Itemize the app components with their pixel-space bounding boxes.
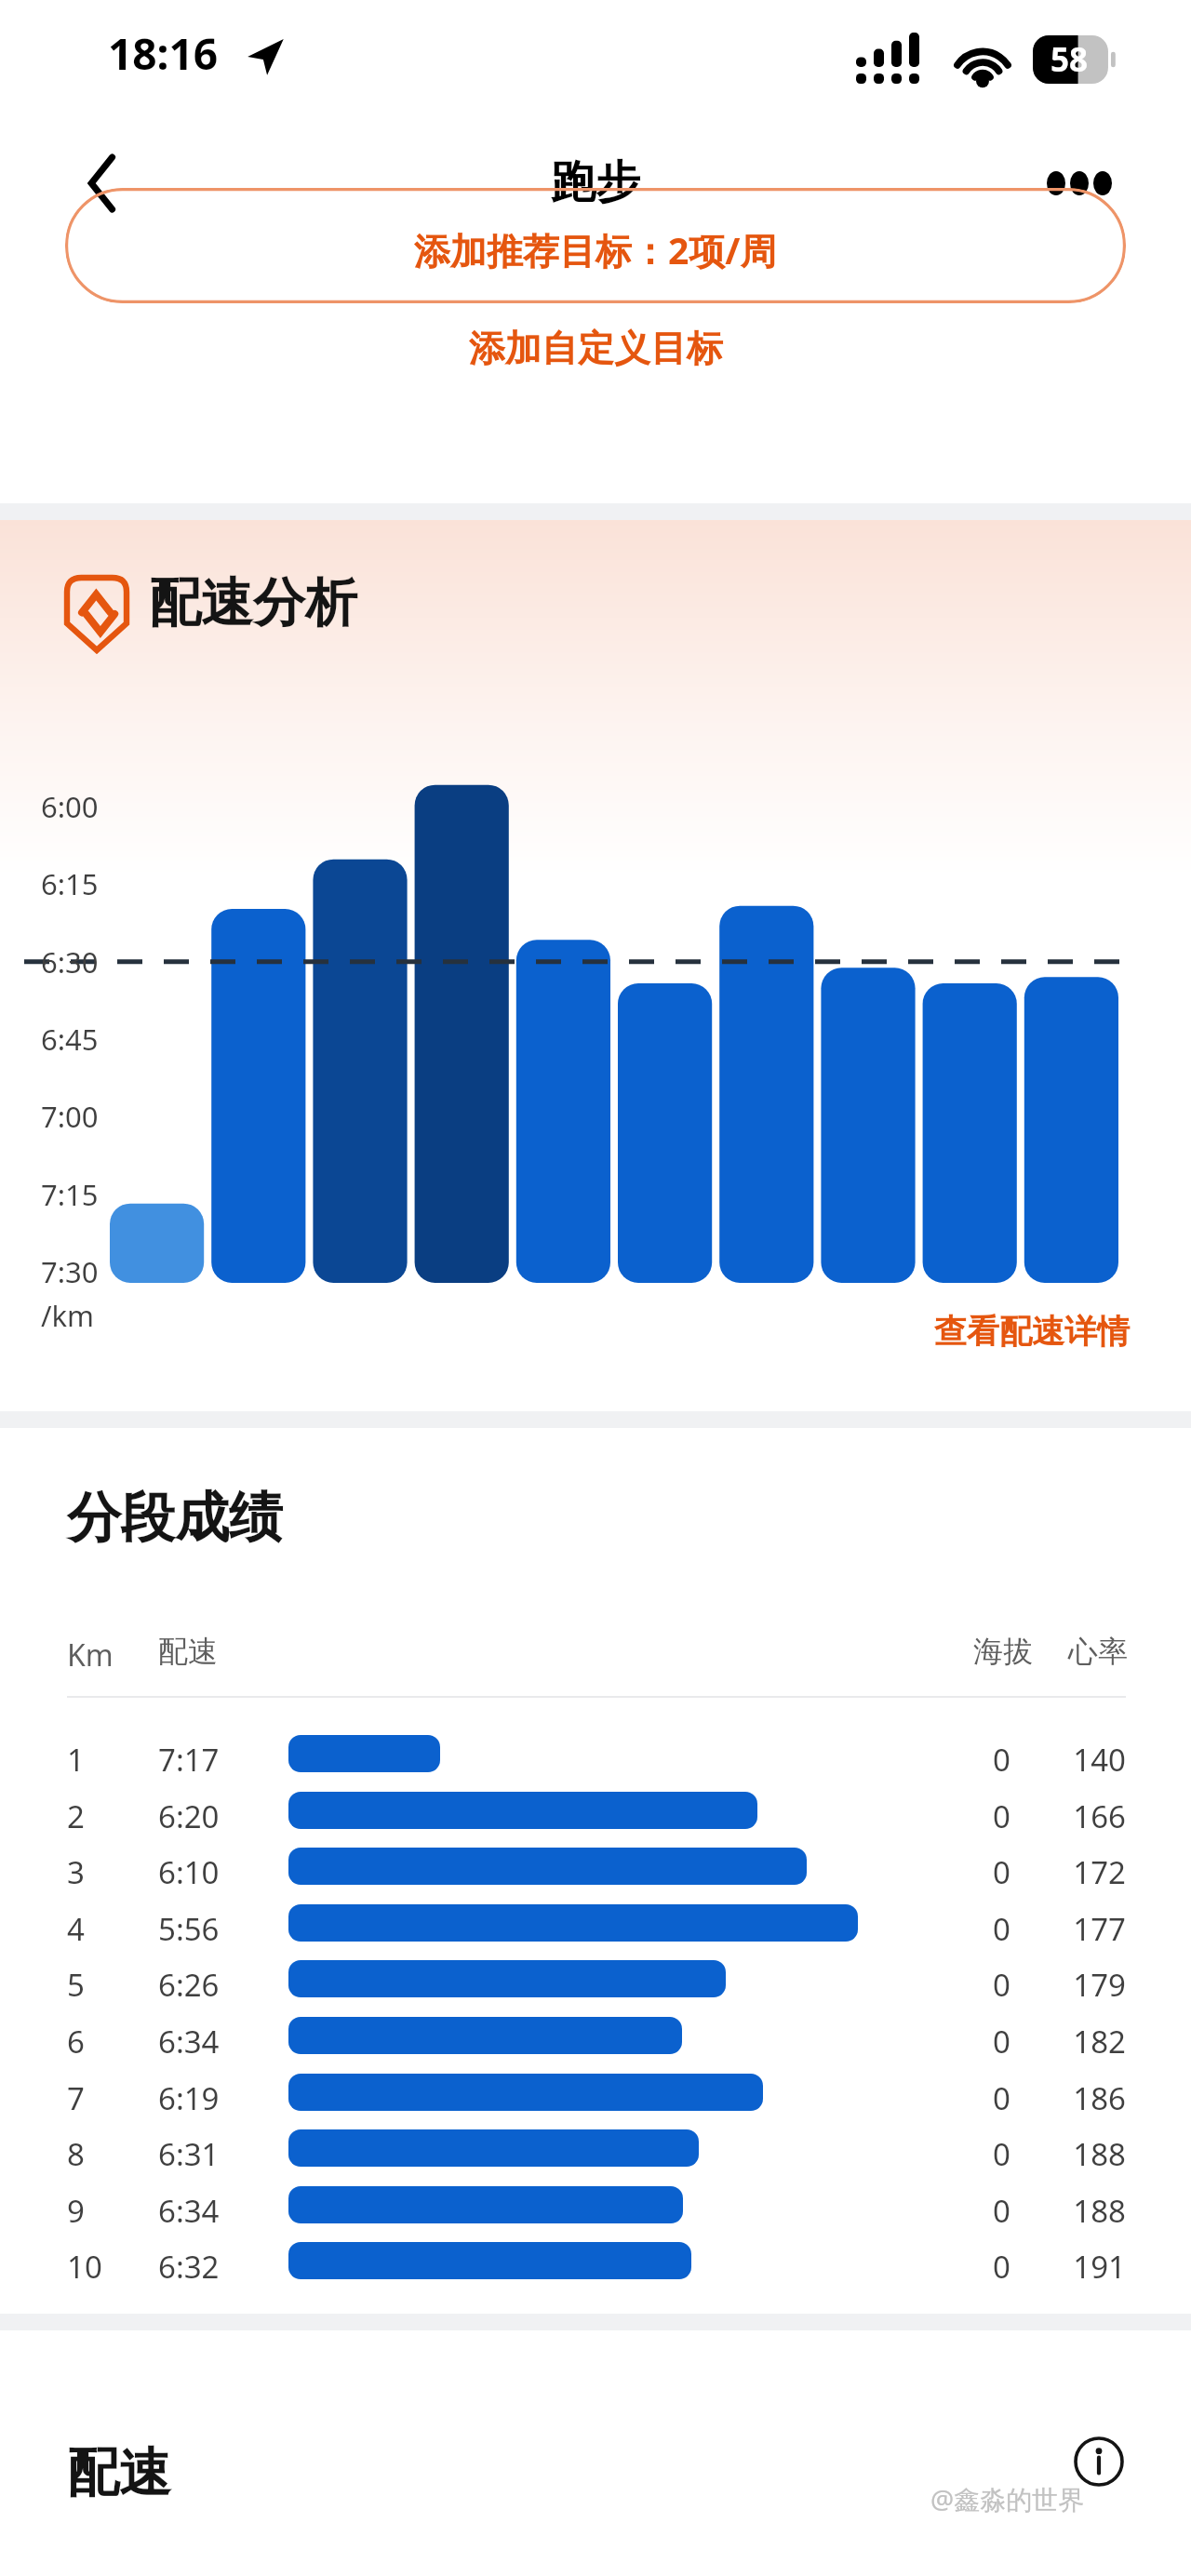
staticText: 0: [958, 1964, 1010, 2006]
staticText: 8: [67, 2133, 85, 2175]
button[interactable]: 查看配速详情: [919, 1298, 1144, 1365]
staticText: 0: [958, 2190, 1010, 2232]
button[interactable]: [0, 1951, 1191, 2008]
staticText: 海拔: [973, 1633, 1033, 1670]
staticText: 7:17: [158, 1739, 220, 1781]
staticText: 4: [67, 1908, 85, 1950]
staticText: 179: [1050, 1964, 1126, 2006]
staticText: 心率: [1068, 1633, 1128, 1670]
staticText: 1: [67, 1739, 85, 1781]
staticText: 6:31: [158, 2133, 220, 2175]
button[interactable]: [0, 2008, 1191, 2064]
staticText: 58: [1050, 37, 1089, 82]
staticText: 3: [67, 1851, 85, 1893]
staticText: 6:32: [158, 2246, 220, 2288]
staticText: 7:30: [41, 1252, 99, 1291]
staticText: 6:30: [41, 942, 99, 981]
button[interactable]: [0, 2233, 1191, 2289]
staticText: 6:00: [41, 787, 99, 826]
staticText: 6:10: [158, 1851, 220, 1893]
staticText: 配速: [67, 2440, 171, 2506]
staticText: 查看配速详情: [934, 1311, 1130, 1352]
staticText: 添加自定义目标: [469, 326, 723, 371]
staticText: /km: [41, 1296, 95, 1335]
staticText: 188: [1050, 2190, 1126, 2232]
staticText: 跑步: [551, 154, 640, 210]
button[interactable]: [65, 188, 1126, 303]
button[interactable]: [0, 1838, 1191, 1895]
button[interactable]: Info: [1068, 2431, 1130, 2492]
staticText: @鑫淼的世界: [930, 2481, 1085, 2516]
button[interactable]: [0, 1726, 1191, 1782]
staticText: 6:34: [158, 2021, 220, 2062]
button[interactable]: 添加自定义目标: [443, 309, 749, 388]
staticText: 0: [958, 1908, 1010, 1950]
staticText: 分段成绩: [67, 1484, 283, 1552]
staticText: 7: [67, 2077, 85, 2119]
staticText: 0: [958, 2133, 1010, 2175]
button[interactable]: [0, 2120, 1191, 2177]
staticText: 18:16: [108, 24, 219, 83]
staticText: 140: [1050, 1739, 1126, 1781]
staticText: 6:19: [158, 2077, 220, 2119]
staticText: 5:56: [158, 1908, 220, 1950]
staticText: 0: [958, 1795, 1010, 1837]
staticText: 6:15: [41, 864, 99, 903]
staticText: 配速分析: [149, 570, 357, 636]
staticText: 7:00: [41, 1097, 99, 1136]
button[interactable]: Back: [63, 143, 143, 223]
staticText: 6:45: [41, 1020, 99, 1059]
staticText: 0: [958, 2021, 1010, 2062]
staticText: 5: [67, 1964, 85, 2006]
staticText: 182: [1050, 2021, 1126, 2062]
button[interactable]: [0, 2064, 1191, 2121]
staticText: 6:34: [158, 2190, 220, 2232]
staticText: 6:26: [158, 1964, 220, 2006]
staticText: 0: [958, 2077, 1010, 2119]
staticText: 0: [958, 1851, 1010, 1893]
staticText: 10: [67, 2246, 102, 2288]
staticText: 2: [67, 1795, 85, 1837]
staticText: 6: [67, 2021, 85, 2062]
staticText: 添加推荐目标：2项/周: [414, 225, 777, 274]
button[interactable]: More options: [1027, 143, 1131, 223]
staticText: Km: [67, 1635, 114, 1675]
staticText: 166: [1050, 1795, 1126, 1837]
button[interactable]: [0, 2177, 1191, 2234]
staticText: 0: [958, 1739, 1010, 1781]
staticText: 191: [1050, 2246, 1126, 2288]
button[interactable]: [0, 1782, 1191, 1839]
staticText: 186: [1050, 2077, 1126, 2119]
staticText: 7:15: [41, 1175, 99, 1214]
staticText: 9: [67, 2190, 85, 2232]
staticText: 6:20: [158, 1795, 220, 1837]
staticText: 配速: [158, 1633, 218, 1670]
button[interactable]: [0, 1895, 1191, 1952]
staticText: 188: [1050, 2133, 1126, 2175]
staticText: 172: [1050, 1851, 1126, 1893]
staticText: 177: [1050, 1908, 1126, 1950]
staticText: 0: [958, 2246, 1010, 2288]
